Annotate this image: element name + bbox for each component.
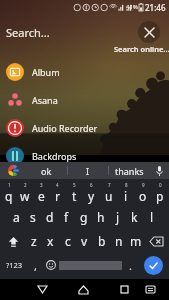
staticText: 7	[108, 182, 111, 188]
staticText: y	[88, 188, 95, 204]
button[interactable]: j	[109, 205, 126, 229]
button[interactable]: g	[75, 205, 92, 229]
staticText: ?123	[6, 260, 23, 270]
button[interactable]: h	[92, 205, 109, 229]
staticText: 5	[73, 182, 76, 188]
button[interactable]: v	[76, 229, 93, 253]
button[interactable]: 4	[49, 181, 66, 205]
button[interactable]: z	[25, 229, 42, 253]
staticText: i	[124, 188, 128, 204]
button[interactable]: ok	[26, 162, 67, 179]
staticText: v	[81, 233, 88, 249]
button[interactable]: l	[143, 205, 160, 229]
button[interactable]: I	[68, 162, 108, 179]
staticText: n	[115, 233, 123, 249]
button[interactable]: k	[126, 205, 143, 229]
button[interactable]: Search	[144, 256, 163, 275]
staticText: e	[38, 188, 45, 204]
button[interactable]: 0	[151, 181, 168, 205]
staticText: Audio Recorder	[32, 122, 98, 134]
staticText: q	[5, 188, 13, 204]
button[interactable]: Backdrops	[0, 142, 169, 170]
staticText: l	[150, 209, 154, 225]
button[interactable]: 3	[33, 181, 49, 205]
staticText: a	[13, 209, 20, 225]
staticText: j	[116, 209, 120, 225]
button[interactable]: c	[59, 229, 76, 253]
button[interactable]: d	[41, 205, 58, 229]
staticText: I	[86, 165, 90, 177]
staticText: k	[131, 209, 138, 225]
button[interactable]: Switch keyboard	[137, 279, 163, 300]
button[interactable]: Back	[29, 279, 55, 300]
button[interactable]: s	[24, 205, 41, 229]
staticText: thanks	[115, 165, 144, 177]
button[interactable]: n	[110, 229, 127, 253]
button[interactable]: f	[58, 205, 75, 229]
button[interactable]: Audio Recorder	[0, 114, 169, 142]
button[interactable]: 8	[117, 181, 134, 205]
button[interactable]: Shift	[1, 229, 25, 253]
staticText: m	[130, 233, 142, 249]
button[interactable]: Backspace	[144, 229, 168, 253]
button[interactable]: ?123	[1, 253, 28, 277]
button[interactable]: x	[42, 229, 59, 253]
staticText: Search online...	[114, 44, 169, 54]
button[interactable]: Asana	[0, 86, 169, 114]
staticText: 41%	[126, 3, 138, 11]
staticText: 4	[56, 182, 59, 188]
staticText: 3	[40, 182, 43, 188]
button[interactable]: m	[127, 229, 144, 253]
staticText: t	[72, 188, 77, 204]
button[interactable]: Google	[0, 162, 26, 179]
button[interactable]: 2	[17, 181, 33, 205]
staticText: z	[31, 233, 37, 249]
button[interactable]: 1	[1, 181, 17, 205]
button[interactable]: 7	[100, 181, 117, 205]
button[interactable]: 9	[134, 181, 151, 205]
staticText: 6	[90, 182, 93, 188]
staticText: p	[156, 188, 164, 204]
staticText: ,	[34, 258, 37, 273]
button[interactable]: thanks	[109, 162, 149, 179]
staticText: Asana	[32, 94, 58, 106]
button[interactable]: Emoji	[42, 253, 59, 277]
staticText: d	[46, 209, 54, 225]
staticText: g	[80, 209, 88, 225]
staticText: Search...	[6, 25, 50, 40]
staticText: Backdrops	[32, 150, 77, 162]
button[interactable]: 6	[83, 181, 100, 205]
staticText: o	[139, 188, 147, 204]
staticText: w	[20, 188, 30, 204]
button[interactable]: b	[93, 229, 110, 253]
button[interactable]: .	[122, 253, 138, 277]
staticText: u	[105, 188, 113, 204]
staticText: 8	[125, 182, 128, 188]
staticText: .	[129, 258, 132, 273]
button[interactable]: Recents	[111, 279, 137, 300]
staticText: c	[65, 233, 71, 249]
staticText: 9	[142, 182, 145, 188]
button[interactable]: 5	[66, 181, 83, 205]
button[interactable]: Album	[0, 58, 169, 86]
staticText: Album	[32, 66, 60, 78]
staticText: b	[98, 233, 106, 249]
staticText: r	[55, 188, 60, 204]
staticText: h	[97, 209, 105, 225]
button[interactable]: Home	[70, 279, 96, 300]
button[interactable]: Close search	[138, 21, 160, 43]
button[interactable]: ,	[28, 253, 42, 277]
staticText: 1	[8, 182, 11, 188]
button[interactable]: a	[8, 205, 24, 229]
staticText: s	[30, 209, 36, 225]
staticText: 21:46	[145, 2, 166, 13]
button[interactable]: Search online...	[112, 43, 169, 55]
button[interactable]: Voice input	[149, 162, 169, 179]
staticText: ok	[41, 165, 52, 177]
staticText: 2	[24, 182, 27, 188]
staticText: x	[47, 233, 54, 249]
staticText: f	[64, 209, 69, 225]
staticText: 0	[159, 182, 162, 188]
